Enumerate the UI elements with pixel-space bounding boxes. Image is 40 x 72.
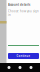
staticText: Account details [8, 3, 30, 6]
button[interactable]: Continue [8, 53, 39, 59]
staticText: Continue [16, 54, 30, 58]
button[interactable]: Home [7, 66, 10, 69]
button[interactable]: Search [18, 66, 21, 69]
button[interactable]: Profile [29, 66, 32, 69]
staticText: Choose how you sign in [8, 9, 39, 17]
